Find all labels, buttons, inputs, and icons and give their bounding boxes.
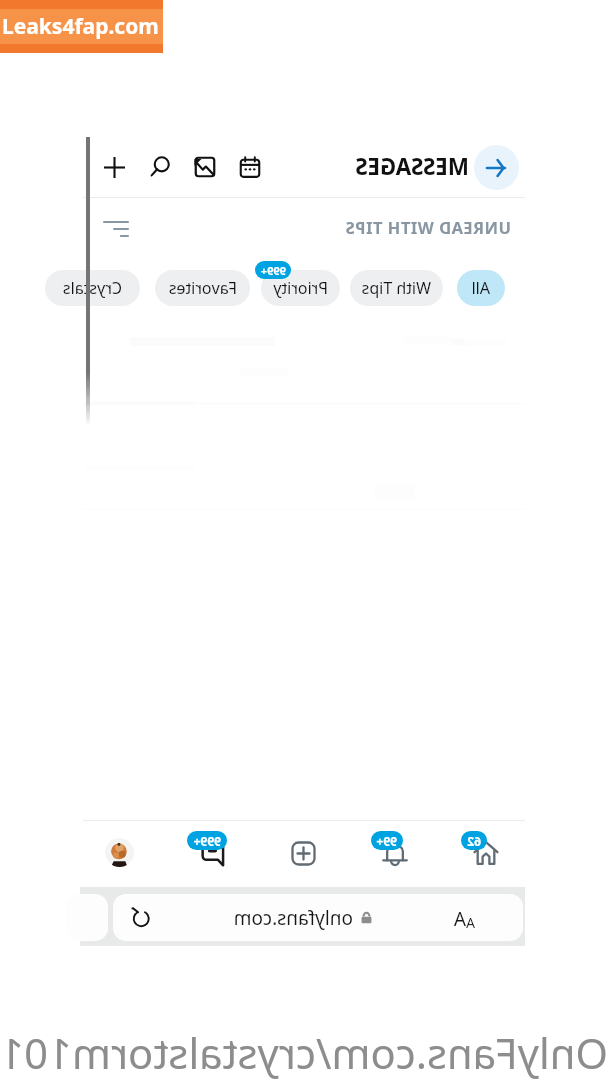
button[interactable]: Notifications bbox=[373, 831, 417, 875]
button[interactable]: Back bbox=[474, 145, 519, 190]
staticText: 999+ bbox=[193, 833, 221, 849]
button[interactable]: Search bbox=[142, 149, 178, 185]
staticText: onlyfans.com bbox=[233, 905, 353, 931]
button[interactable]: Favorites bbox=[155, 270, 250, 306]
button[interactable]: Messages bbox=[191, 831, 235, 875]
button[interactable]: Sort bbox=[101, 214, 131, 244]
button[interactable]: Calendar bbox=[232, 149, 268, 185]
staticText: MESSAGES bbox=[355, 151, 469, 182]
staticText: Crystals bbox=[62, 277, 122, 299]
staticText: Leaks4fap.com bbox=[2, 12, 159, 41]
button[interactable]: Reload bbox=[129, 906, 153, 930]
staticText: OnlyFans.com/crystalstorm101 bbox=[0, 1024, 608, 1080]
staticText: 999+ bbox=[260, 263, 286, 278]
staticText: With Tips bbox=[361, 277, 431, 299]
button[interactable]: With Tips bbox=[350, 270, 443, 306]
button[interactable]: New message bbox=[97, 149, 133, 185]
button[interactable]: Reload bbox=[113, 894, 523, 941]
button[interactable]: Crystals bbox=[45, 270, 140, 306]
staticText: 99+ bbox=[376, 833, 397, 849]
button[interactable]: New post bbox=[282, 831, 326, 875]
button[interactable]: Priority bbox=[261, 270, 340, 306]
staticText: 62 bbox=[467, 833, 481, 849]
button[interactable]: Profile bbox=[105, 838, 134, 867]
staticText: A bbox=[466, 913, 475, 932]
staticText: UNREAD WITH TIPS bbox=[345, 216, 511, 238]
staticText: Priority bbox=[273, 277, 328, 299]
button[interactable]: Stats bbox=[187, 149, 223, 185]
staticText: All bbox=[471, 277, 490, 299]
staticText: Favorites bbox=[168, 277, 237, 299]
button[interactable]: All bbox=[457, 270, 505, 306]
staticText: A bbox=[453, 906, 466, 932]
button[interactable]: Home bbox=[464, 831, 508, 875]
